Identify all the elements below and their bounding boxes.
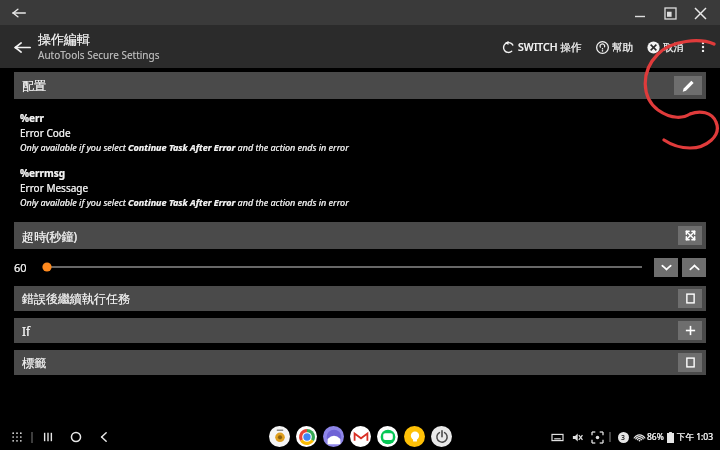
staticText: Error Code xyxy=(20,126,71,140)
button[interactable]: 標籤 xyxy=(14,350,706,375)
button[interactable]: Randomize xyxy=(678,226,702,245)
button[interactable]: All apps xyxy=(8,428,26,446)
button[interactable]: 超時(秒鐘) xyxy=(14,222,706,249)
button[interactable]: Toggle label xyxy=(678,353,702,372)
staticText: 標籤 xyxy=(22,355,46,370)
button[interactable]: Decrease xyxy=(654,258,678,277)
button[interactable]: Toggle xyxy=(678,289,702,308)
staticText: 86% xyxy=(647,431,664,443)
button[interactable]: More options xyxy=(690,34,716,60)
button[interactable]: Back xyxy=(95,428,113,446)
button[interactable]: Recents xyxy=(39,428,57,446)
staticText: 幫助 xyxy=(612,41,633,54)
button[interactable]: Home xyxy=(67,428,85,446)
staticText: AutoTools Secure Settings xyxy=(38,48,160,62)
staticText: 下午 1:03 xyxy=(677,431,714,443)
staticText: %errmsg xyxy=(20,166,66,180)
button[interactable]: Browser xyxy=(323,426,344,447)
staticText: 60 xyxy=(14,260,27,275)
staticText: 操作編輯 xyxy=(38,31,90,47)
staticText: 錯誤後繼續執行任務 xyxy=(22,291,130,306)
staticText: %err xyxy=(20,111,44,125)
staticText: SWITCH 操作 xyxy=(518,40,582,54)
button[interactable]: Maximize xyxy=(658,1,682,25)
button[interactable]: Timeout slider xyxy=(41,255,642,279)
button[interactable]: Navigate up xyxy=(6,31,38,63)
button[interactable]: Add condition xyxy=(678,321,702,340)
button[interactable]: SWITCH 操作 xyxy=(500,36,584,58)
button[interactable]: Increase xyxy=(682,258,706,277)
staticText: 取消 xyxy=(663,41,684,54)
staticText: Error Message xyxy=(20,181,89,195)
staticText: Only available if you select Continue Ta… xyxy=(20,141,349,153)
button[interactable]: 幫助 xyxy=(594,37,635,58)
button[interactable]: 錯誤後繼續執行任務 xyxy=(14,286,706,311)
button[interactable]: Chrome xyxy=(296,426,317,447)
staticText: If xyxy=(22,323,31,339)
button[interactable]: Power xyxy=(431,426,452,447)
button[interactable]: If xyxy=(14,318,706,343)
button[interactable]: Gmail xyxy=(350,426,371,447)
button[interactable]: Flashlight xyxy=(404,426,425,447)
button[interactable]: 取消 xyxy=(645,37,686,58)
button[interactable]: Tasker xyxy=(269,426,290,447)
staticText: 3 xyxy=(621,433,626,443)
button[interactable]: 配置 xyxy=(14,72,706,99)
button[interactable]: Minimize xyxy=(628,1,652,25)
button[interactable]: Close xyxy=(688,1,712,25)
button[interactable]: Line xyxy=(377,426,398,447)
button[interactable]: Edit xyxy=(674,76,702,95)
staticText: 超時(秒鐘) xyxy=(22,228,78,244)
staticText: Only available if you select Continue Ta… xyxy=(20,196,349,208)
button[interactable]: Back xyxy=(6,0,32,25)
staticText: 配置 xyxy=(22,78,46,93)
